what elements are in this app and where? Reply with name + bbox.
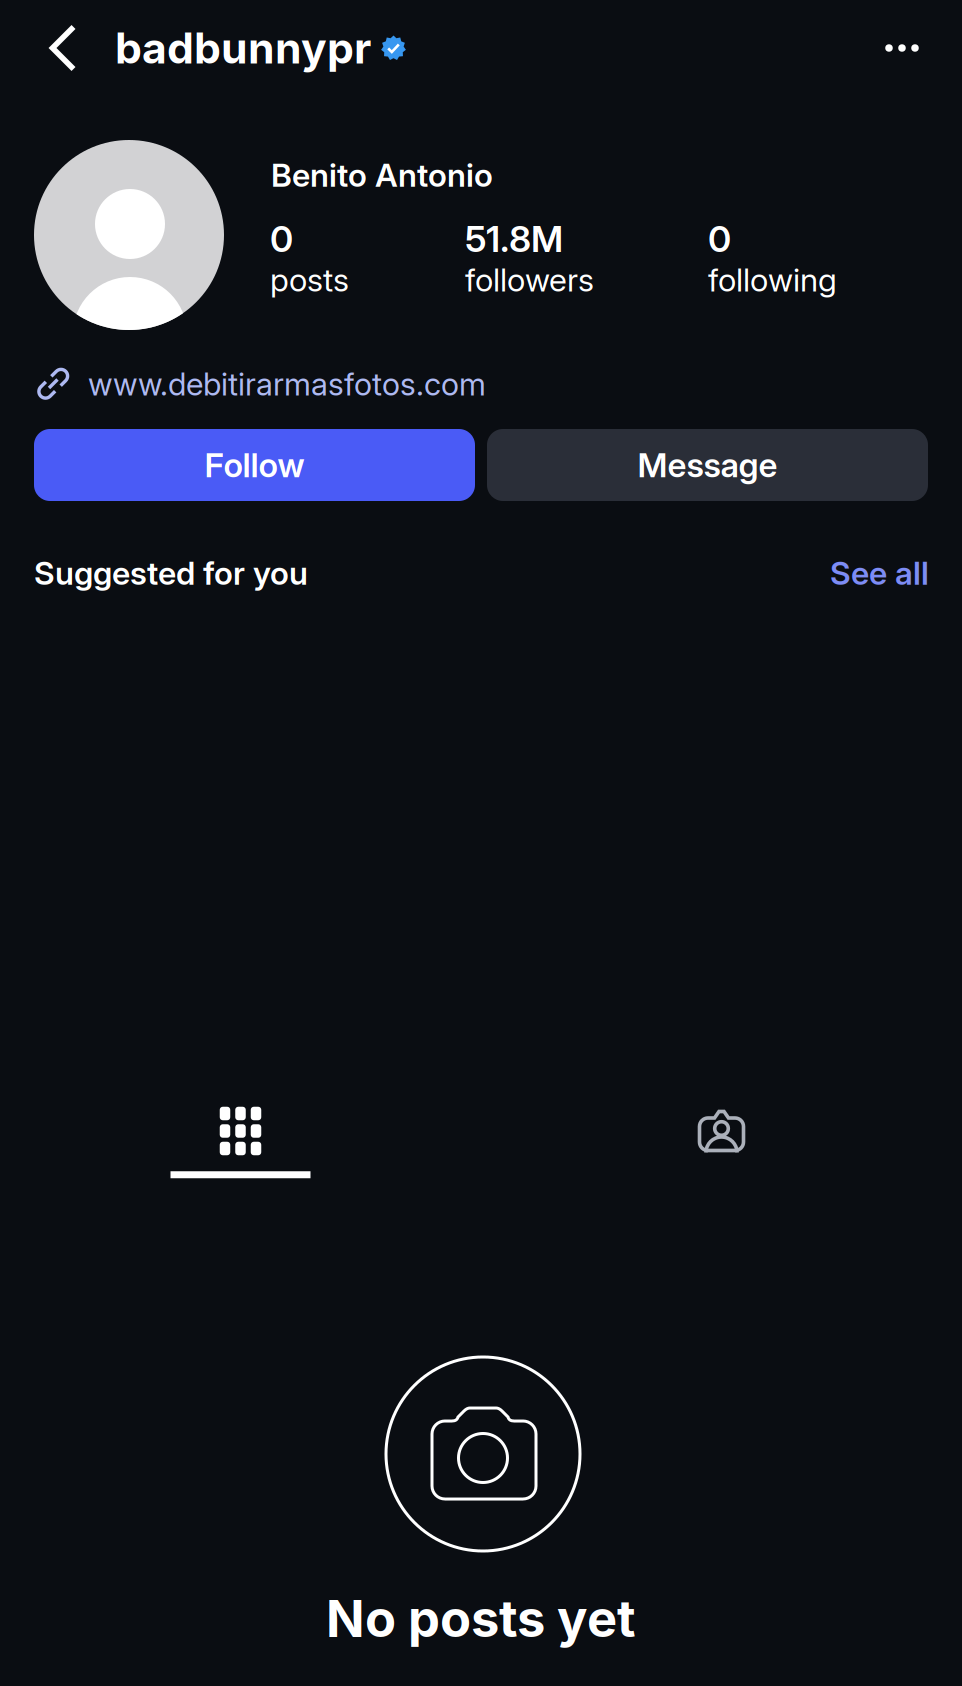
staticText: Message [637,445,777,485]
staticText: Benito Antonio [271,156,493,194]
staticText: 51.8M [465,217,563,261]
staticText: following [708,261,837,299]
staticText: Follow [204,445,304,485]
button[interactable]: Back [15,0,111,96]
button[interactable]: Follow [34,429,475,501]
staticText: 0 [270,217,293,261]
button[interactable]: Message [487,429,928,501]
staticText: badbunnypr [115,22,371,74]
staticText: posts [270,261,349,299]
button[interactable]: Posts grid [0,1094,481,1190]
staticText: Suggested for you [34,554,308,592]
button[interactable]: See all [749,545,929,601]
staticText: followers [465,261,594,299]
staticText: No posts yet [326,1588,636,1649]
button[interactable]: More options [856,2,948,94]
staticText: See all [830,554,929,592]
staticText: 0 [708,217,731,261]
button[interactable]: www.debitirarmasfotos.com [34,357,554,411]
staticText: www.debitirarmasfotos.com [88,365,486,403]
button[interactable]: Tagged photos [481,1094,962,1190]
